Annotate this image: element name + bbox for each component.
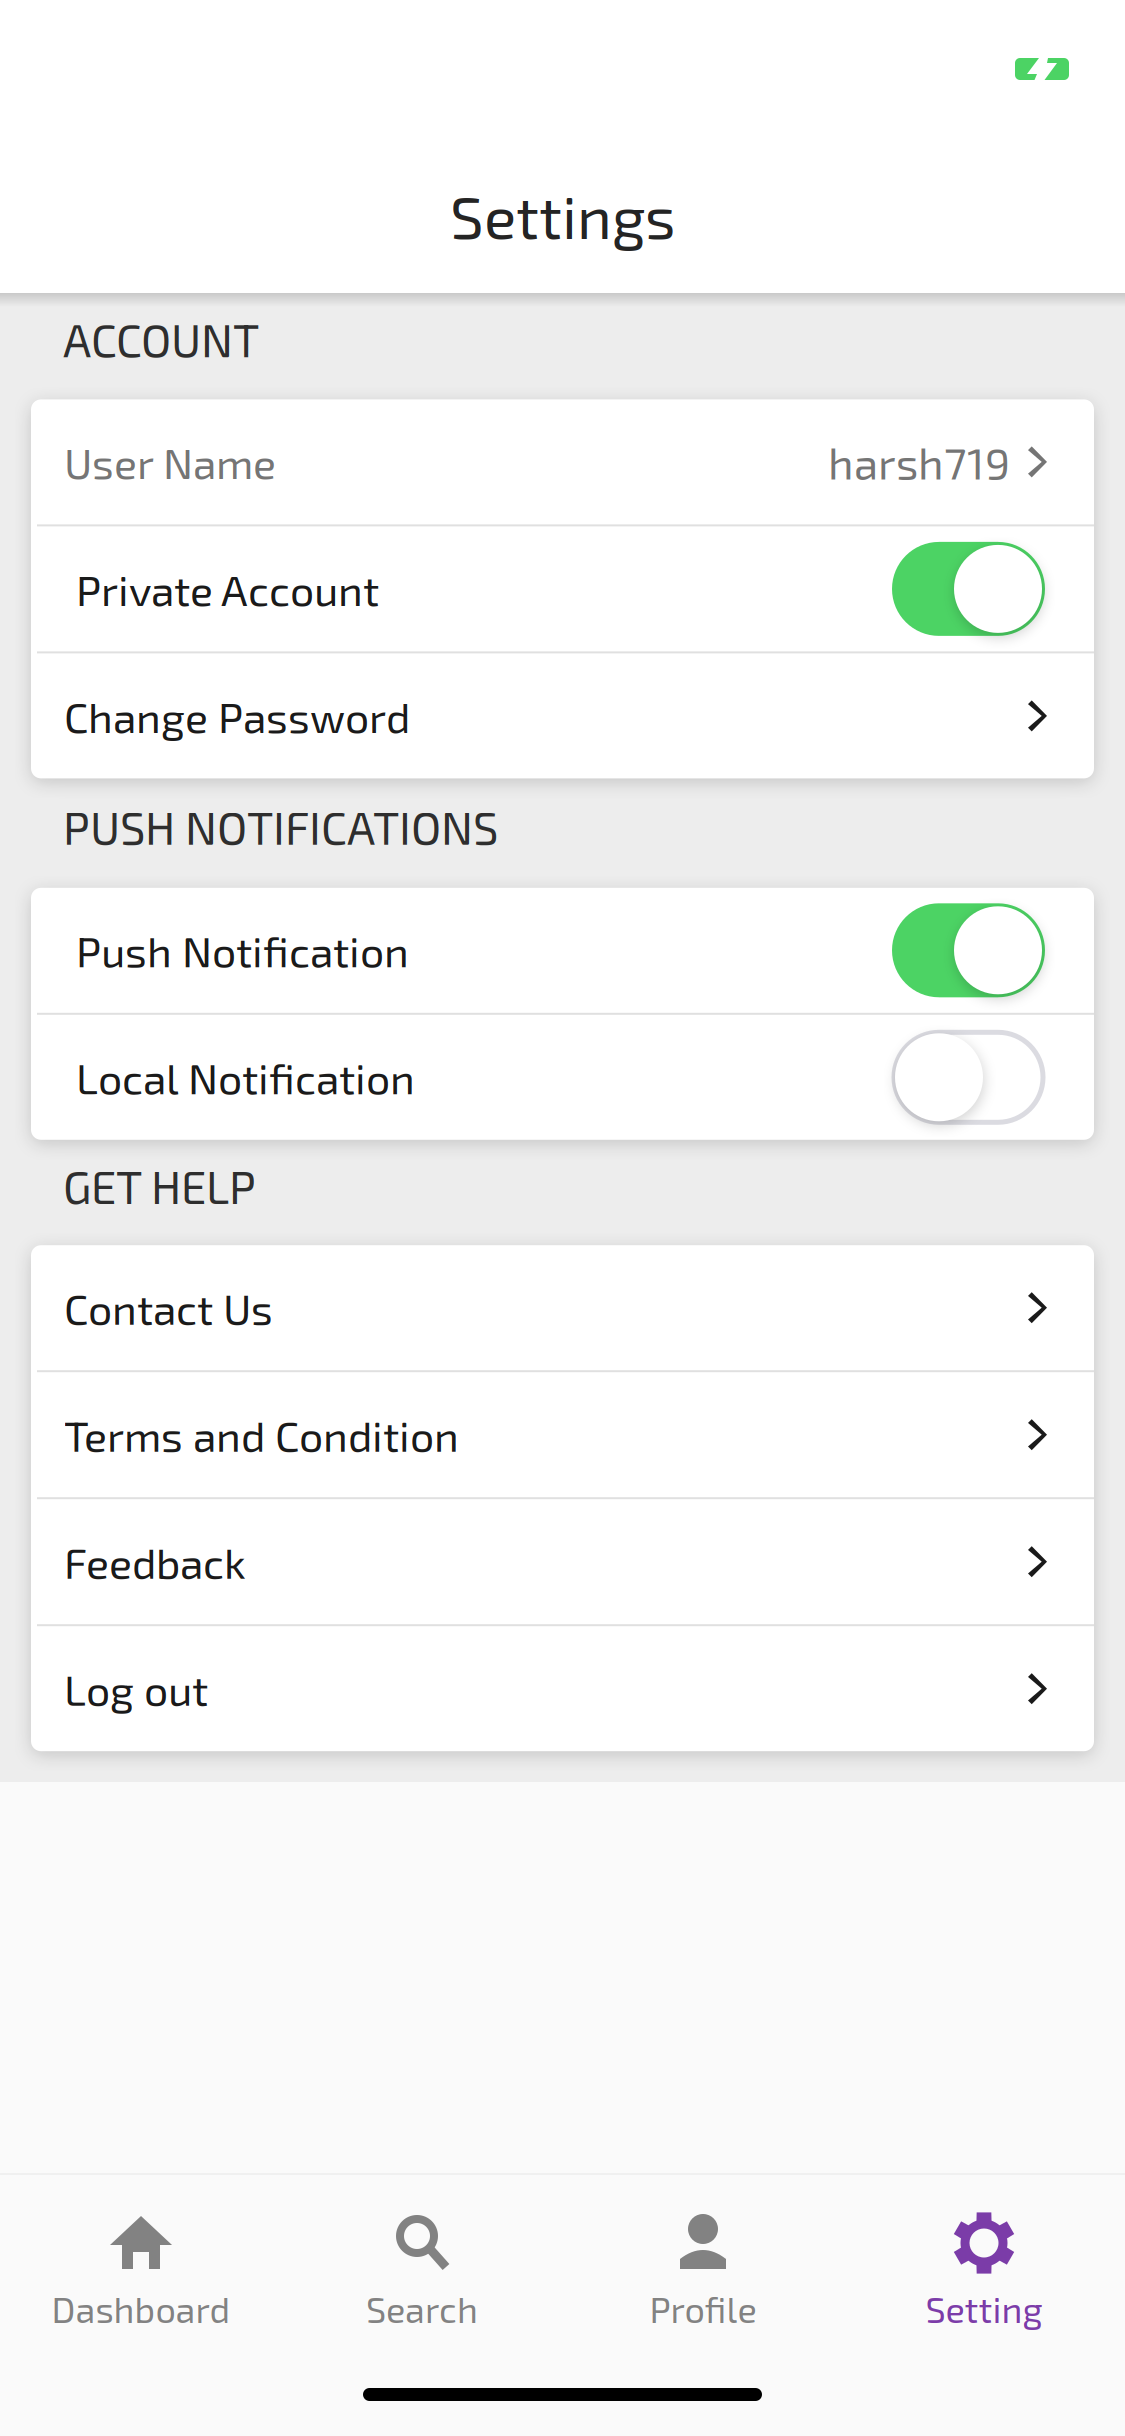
staticText: Local Notification [76,1052,415,1103]
staticText: Feedback [64,1536,246,1587]
staticText: Dashboard [51,2287,230,2330]
button[interactable]: Dashboard [0,2175,281,2353]
staticText: Setting [925,2287,1042,2330]
staticText: GET HELP [63,1159,256,1213]
staticText: PUSH NOTIFICATIONS [63,799,498,854]
button[interactable]: Change Password [31,653,1094,778]
button[interactable]: User Name [31,399,1094,524]
button[interactable]: Profile [562,2175,843,2353]
button[interactable]: Terms and Condition [31,1372,1094,1497]
staticText: Profile [649,2287,756,2330]
staticText: ACCOUNT [63,312,259,366]
staticText: Search [366,2287,478,2330]
staticText: harsh719 [828,435,1010,488]
button[interactable]: Private Account [31,526,1094,651]
button[interactable]: Log out [31,1626,1094,1751]
button[interactable]: Setting [843,2175,1124,2353]
button[interactable]: Search [281,2175,562,2353]
staticText: Contact Us [64,1282,273,1333]
button[interactable]: Contact Us [31,1245,1094,1370]
staticText: Terms and Condition [64,1409,459,1460]
staticText: Log out [64,1663,208,1714]
staticText: Private Account [76,563,379,614]
button[interactable]: Local Notification [31,1015,1094,1140]
button[interactable]: Feedback [31,1499,1094,1624]
staticText: Change Password [64,690,410,741]
staticText: User Name [64,436,276,487]
button[interactable]: Push Notification [31,888,1094,1013]
staticText: Push Notification [76,925,409,976]
staticText: Settings [450,179,675,251]
